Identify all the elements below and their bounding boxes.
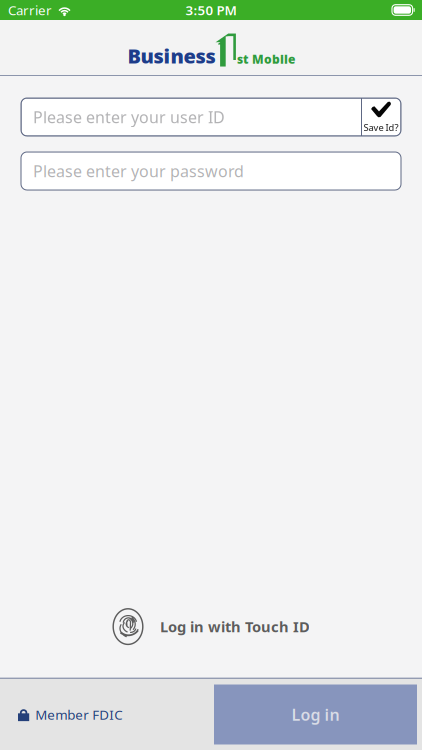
staticText: Log in — [291, 704, 339, 725]
staticText: Please enter your password — [33, 160, 244, 182]
button[interactable]: Log in with Touch ID — [0, 599, 422, 655]
staticText: Carrier — [8, 1, 52, 19]
staticText: Save Id? — [363, 121, 398, 133]
staticText: Please enter your user ID — [33, 106, 225, 128]
button[interactable]: Log in — [214, 684, 417, 744]
staticText: 3:50 PM — [185, 1, 236, 19]
button[interactable]: Save Id — [361, 98, 401, 136]
staticText: Business — [127, 42, 215, 69]
staticText: st Mobile — [237, 51, 295, 67]
staticText: Member FDIC — [35, 706, 122, 723]
staticText: Log in with Touch ID — [160, 617, 310, 636]
